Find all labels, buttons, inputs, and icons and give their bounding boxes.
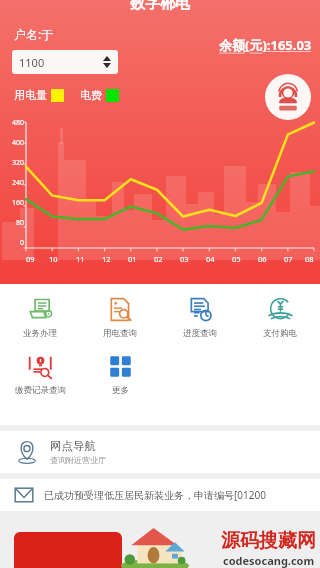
- staticText: 查询附近营业厅: [50, 455, 106, 465]
- staticText: 1100: [19, 55, 45, 70]
- staticText: 02: [154, 254, 163, 264]
- button[interactable]: 更多: [80, 349, 160, 400]
- staticText: 03: [180, 254, 189, 264]
- button[interactable]: 业务办理: [0, 292, 80, 343]
- button[interactable]: 已成功预受理低压居民新装业务，申请编号[01200: [0, 479, 320, 511]
- button[interactable]: 余额(元):165.03: [219, 36, 312, 54]
- staticText: 0: [0, 238, 24, 248]
- staticText: 01: [128, 254, 137, 264]
- staticText: 业务办理: [23, 328, 57, 339]
- staticText: 160: [0, 198, 24, 208]
- staticText: 80: [0, 218, 24, 228]
- staticText: 10: [49, 254, 58, 264]
- button[interactable]: 用电查询: [80, 292, 160, 343]
- staticText: 源码搜藏网: [221, 529, 316, 553]
- button[interactable]: 网点导航: [0, 431, 320, 473]
- staticText: 09: [26, 254, 35, 264]
- staticText: 11: [76, 254, 85, 264]
- staticText: 480: [0, 118, 24, 128]
- button[interactable]: 进度查询: [160, 292, 240, 343]
- staticText: 支付购电: [263, 328, 297, 339]
- button[interactable]: 客服热线: [265, 74, 311, 120]
- button[interactable]: 缴费记录查询: [0, 349, 80, 400]
- staticText: 06: [258, 254, 267, 264]
- staticText: 320: [0, 158, 24, 168]
- button[interactable]: 支付购电: [240, 292, 320, 343]
- staticText: codesocang.com: [223, 553, 315, 568]
- staticText: 400: [0, 138, 24, 148]
- staticText: 数字郴电: [130, 0, 190, 13]
- staticText: 用电量: [14, 88, 47, 102]
- staticText: 电费: [80, 88, 102, 102]
- staticText: 缴费记录查询: [15, 385, 66, 396]
- button[interactable]: 1100: [12, 50, 118, 74]
- staticText: 进度查询: [183, 328, 217, 339]
- staticText: 12: [102, 254, 111, 264]
- staticText: 已成功预受理低压居民新装业务，申请编号[01200: [44, 488, 266, 502]
- staticText: 04: [206, 254, 215, 264]
- staticText: 网点导航: [50, 439, 96, 453]
- staticText: 240: [0, 178, 24, 188]
- staticText: 用电查询: [103, 328, 137, 339]
- staticText: 07: [284, 254, 293, 264]
- button[interactable]: [14, 532, 122, 568]
- staticText: 08: [305, 254, 314, 264]
- staticText: 更多: [112, 385, 129, 396]
- staticText: 户名:于: [14, 26, 54, 42]
- staticText: 05: [232, 254, 241, 264]
